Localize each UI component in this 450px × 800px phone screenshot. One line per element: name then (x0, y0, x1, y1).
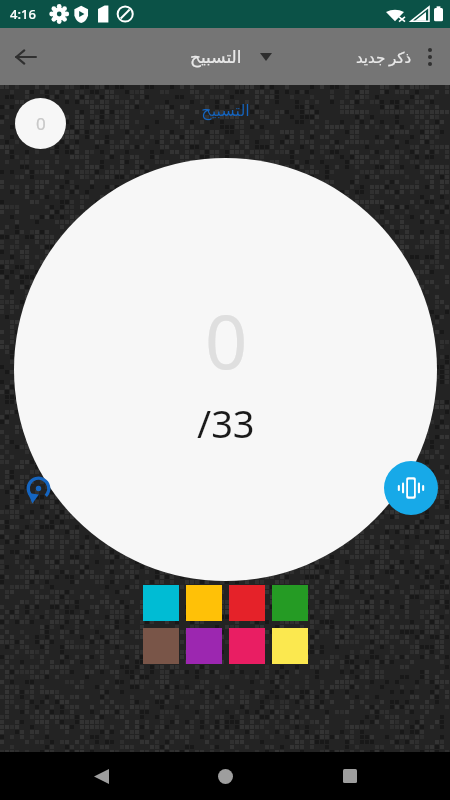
staticText: 4:16 (10, 5, 36, 23)
button[interactable]: التسبيح (190, 47, 272, 67)
button[interactable]: Tap to count (14, 158, 437, 581)
button[interactable]: Home (201, 752, 249, 800)
staticText: 0 (36, 112, 46, 135)
staticText: التسبيح (201, 101, 250, 120)
staticText: ذكر جديد (356, 47, 412, 67)
button[interactable]: Back (0, 31, 52, 83)
button[interactable]: Reset (16, 466, 60, 510)
button[interactable]: Recents (326, 752, 374, 800)
staticText: 0 (205, 290, 248, 391)
button[interactable]: Rounds (15, 98, 66, 149)
staticText: التسبيح (190, 47, 242, 67)
button[interactable]: More options (410, 37, 450, 77)
button[interactable]: Back (77, 752, 125, 800)
button[interactable]: Vibrate (384, 461, 438, 515)
staticText: /33 (197, 397, 255, 449)
button[interactable]: ذكر جديد (356, 47, 412, 67)
